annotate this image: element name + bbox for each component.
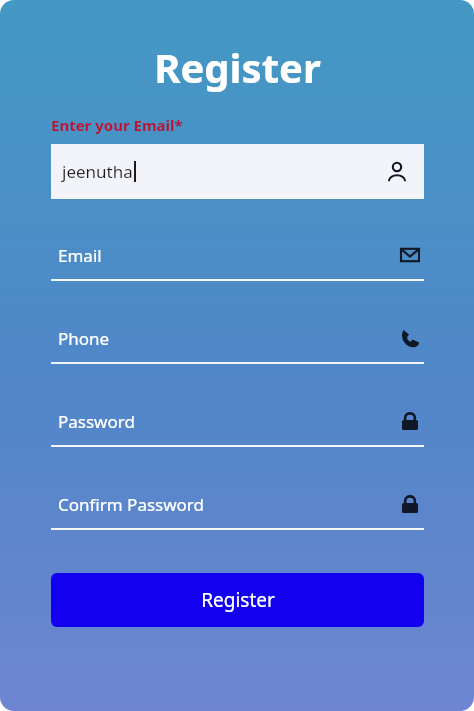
other: Email <box>397 242 423 268</box>
staticText: Password <box>58 410 135 433</box>
staticText: Register <box>201 587 275 613</box>
button[interactable]: Register <box>51 573 424 627</box>
staticText: Enter your Email* <box>51 115 183 135</box>
button[interactable]: Phone <box>51 325 424 364</box>
staticText: jeenutha <box>62 160 133 183</box>
button[interactable]: Confirm Password <box>51 491 424 530</box>
other: Password <box>397 491 423 517</box>
staticText: Phone <box>58 327 110 350</box>
staticText: Confirm Password <box>58 493 204 516</box>
staticText: Register <box>154 40 321 94</box>
staticText: Email <box>58 244 102 267</box>
button[interactable]: Email <box>51 242 424 281</box>
button[interactable]: Password <box>51 408 424 447</box>
other: Password <box>397 408 423 434</box>
button[interactable]: jeenutha <box>51 144 424 199</box>
other: Phone <box>397 325 423 351</box>
other: Account <box>382 157 412 187</box>
